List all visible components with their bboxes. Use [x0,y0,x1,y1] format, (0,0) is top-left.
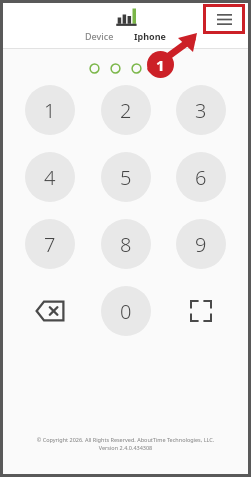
staticText: 4 [44,164,56,191]
staticText: 1 [156,55,165,75]
staticText: 7 [44,231,56,258]
staticText: 8 [120,231,132,258]
staticText: Device [85,30,114,42]
button[interactable]: Menu [203,4,245,34]
button[interactable]: 3 [176,85,226,135]
button[interactable]: Scan barcode [176,286,226,336]
button[interactable]: Backspace [25,286,75,336]
staticText: 5 [120,164,132,191]
staticText: © Copyright 2026. All Rights Reserved. A… [11,436,240,452]
button[interactable]: 1 [25,85,75,135]
button[interactable]: 6 [176,152,226,202]
button[interactable]: 0 [101,286,151,336]
button[interactable]: 4 [25,152,75,202]
button[interactable]: 7 [25,219,75,269]
button[interactable]: Device [81,29,118,43]
staticText: 6 [195,164,207,191]
button[interactable]: 8 [101,219,151,269]
staticText: Iphone [134,30,166,42]
staticText: 2 [120,97,132,124]
button[interactable]: 2 [101,85,151,135]
button[interactable]: 9 [176,219,226,269]
button[interactable]: Iphone [130,29,170,43]
staticText: 0 [120,298,132,325]
staticText: 1 [44,97,56,124]
staticText: 3 [195,97,207,124]
staticText: 9 [195,231,207,258]
button[interactable]: 5 [101,152,151,202]
